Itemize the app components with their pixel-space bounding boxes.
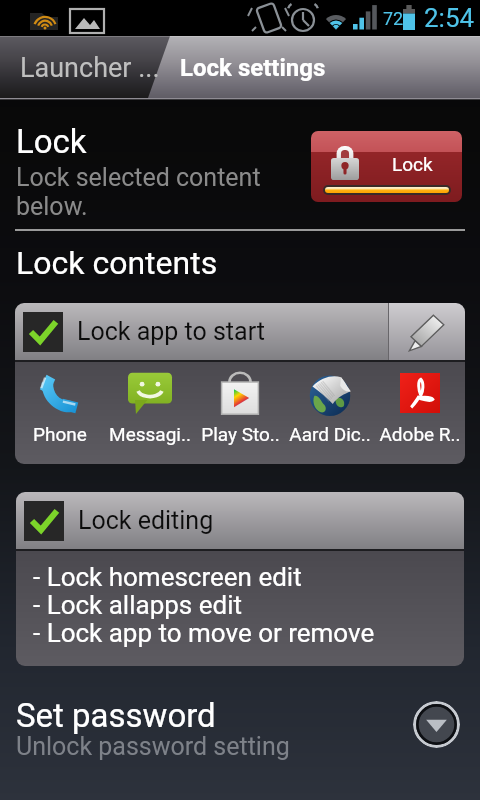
staticText: Play Sto.. [201, 423, 280, 445]
staticText: Lock selected content below. [16, 163, 268, 221]
staticText: Lock contents [16, 244, 218, 282]
button[interactable]: Set password [0, 692, 480, 792]
button[interactable]: Checked [16, 492, 464, 549]
staticText: Adobe R.. [379, 423, 461, 445]
staticText: Aard Dic.. [289, 423, 371, 445]
button[interactable]: Aard Dic.. [285, 362, 375, 464]
staticText: Lock app to start [77, 317, 265, 346]
staticText: Lock [16, 122, 87, 161]
button[interactable]: Checked [24, 501, 64, 541]
staticText: Lock settings [180, 54, 326, 82]
button[interactable]: Launcher ... [20, 52, 160, 84]
button[interactable]: Checked [23, 312, 63, 352]
button[interactable]: Play Sto.. [195, 362, 285, 464]
button[interactable]: Phone [15, 362, 105, 464]
staticText: - Lock app to move or remove [33, 618, 375, 648]
staticText: - Lock allapps edit [33, 590, 242, 620]
staticText: 2:54 [424, 3, 475, 33]
button[interactable]: Lock [311, 131, 462, 202]
staticText: Lock [392, 153, 433, 175]
button[interactable]: Edit [389, 303, 465, 360]
button[interactable]: Checked [15, 303, 389, 360]
staticText: 72 [383, 8, 404, 29]
button[interactable]: Expand [413, 701, 460, 748]
staticText: Set password [16, 696, 216, 735]
button[interactable]: Messagi.. [105, 362, 195, 464]
staticText: - Lock homescreen edit [33, 562, 302, 592]
staticText: Lock editing [78, 506, 214, 535]
button[interactable]: Adobe R.. [375, 362, 465, 464]
button[interactable]: Lock settings [180, 54, 326, 82]
staticText: Messagi.. [109, 423, 191, 445]
staticText: Launcher ... [20, 52, 160, 84]
staticText: Phone [33, 423, 87, 445]
staticText: Unlock password setting [16, 732, 290, 761]
